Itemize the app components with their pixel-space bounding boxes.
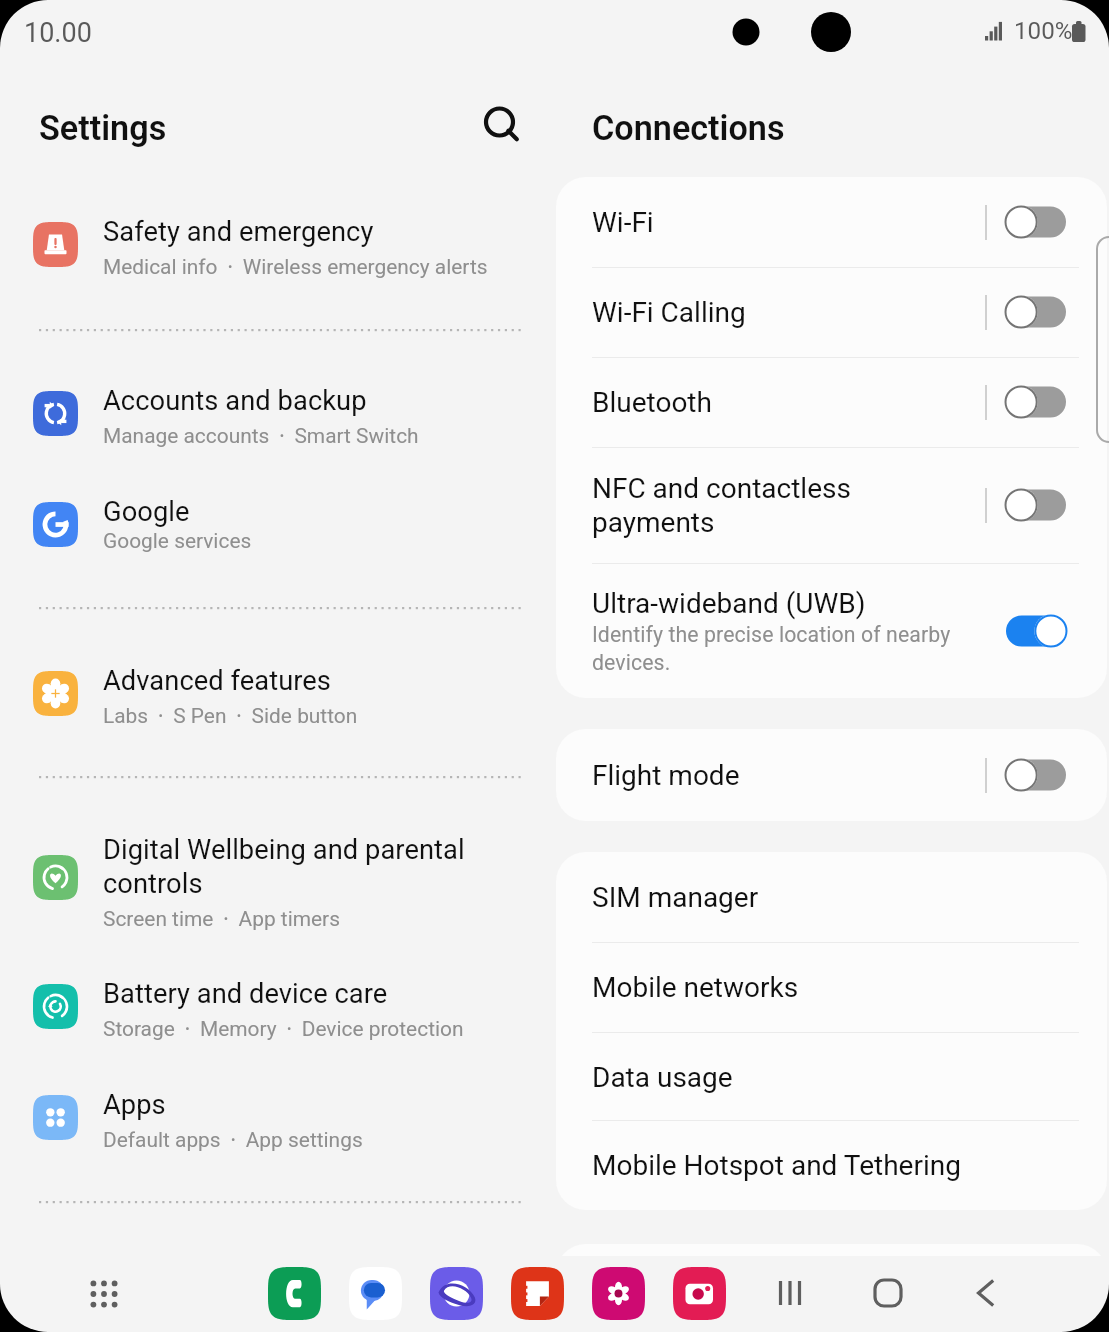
- button[interactable]: Mobile Hotspot and Tethering: [556, 1120, 1107, 1210]
- staticText: Data usage: [592, 1061, 733, 1094]
- button[interactable]: Search: [475, 98, 531, 154]
- staticText: 10.00: [24, 17, 92, 49]
- button[interactable]: Bluetooth: [1004, 380, 1074, 424]
- staticText: Apps: [103, 1087, 166, 1121]
- button[interactable]: Battery and device care: [0, 967, 556, 1053]
- staticText: Mobile networks: [592, 971, 799, 1004]
- button[interactable]: NFC and contactless payments: [1004, 483, 1074, 527]
- button[interactable]: Wi-Fi: [1004, 200, 1074, 244]
- button[interactable]: Safety and emergency: [0, 205, 556, 291]
- button[interactable]: Mobile networks: [556, 942, 1107, 1032]
- button[interactable]: internet: [430, 1267, 483, 1320]
- staticText: Ultra-wideband (UWB): [592, 586, 866, 620]
- button[interactable]: Apps: [0, 1078, 556, 1164]
- button[interactable]: Apps: [77, 1267, 130, 1320]
- staticText: Wi-Fi Calling: [592, 295, 746, 329]
- button[interactable]: Home: [858, 1263, 918, 1323]
- staticText: Screen time • App timers: [103, 899, 340, 932]
- staticText: Medical info • Wireless emergency alerts: [103, 247, 488, 280]
- staticText: Accounts and backup: [103, 383, 367, 417]
- staticText: Google services: [103, 527, 252, 553]
- button[interactable]: Data usage: [556, 1032, 1107, 1122]
- button[interactable]: Flight mode: [1004, 753, 1074, 797]
- button[interactable]: Back: [956, 1263, 1016, 1323]
- staticText: Labs • S Pen • Side button: [103, 696, 358, 729]
- button[interactable]: Bluetooth: [556, 357, 1107, 447]
- button[interactable]: phone: [268, 1267, 321, 1320]
- button[interactable]: gallery: [592, 1267, 645, 1320]
- staticText: Manage accounts • Smart Switch: [103, 416, 419, 449]
- button[interactable]: Google: [0, 485, 556, 571]
- button[interactable]: Flight mode: [556, 729, 1107, 821]
- staticText: Digital Wellbeing and parental controls: [103, 832, 465, 900]
- staticText: Bluetooth: [592, 385, 712, 419]
- button[interactable]: Recents: [760, 1263, 820, 1323]
- staticText: Flight mode: [592, 758, 740, 792]
- staticText: Google: [103, 494, 190, 528]
- button[interactable]: Digital Wellbeing and parental controls: [0, 832, 556, 950]
- button[interactable]: camera: [673, 1267, 726, 1320]
- button[interactable]: messages: [349, 1267, 402, 1320]
- button[interactable]: Wi-Fi Calling: [1004, 290, 1074, 334]
- button[interactable]: NFC and contactless payments: [556, 447, 1107, 563]
- staticText: Battery and device care: [103, 976, 388, 1010]
- staticText: Storage • Memory • Device protection: [103, 1009, 464, 1042]
- staticText: Safety and emergency: [103, 214, 374, 248]
- staticText: Connections: [592, 108, 785, 148]
- button[interactable]: Wi-Fi: [556, 177, 1107, 267]
- staticText: Advanced features: [103, 663, 331, 697]
- staticText: Default apps • App settings: [103, 1120, 363, 1153]
- button[interactable]: SIM manager: [556, 852, 1107, 942]
- button[interactable]: Accounts and backup: [0, 374, 556, 460]
- button[interactable]: Wi-Fi Calling: [556, 267, 1107, 357]
- staticText: Settings: [39, 108, 167, 148]
- button[interactable]: Ultra-wideband (UWB): [1004, 609, 1074, 653]
- button[interactable]: Ultra-wideband (UWB): [556, 563, 1107, 698]
- staticText: NFC and contactless payments: [592, 471, 851, 539]
- staticText: Identify the precise location of nearby …: [592, 620, 951, 676]
- staticText: SIM manager: [592, 881, 759, 914]
- staticText: Wi-Fi: [592, 205, 654, 239]
- staticText: 100%: [1014, 17, 1073, 45]
- button[interactable]: Advanced features: [0, 654, 556, 740]
- staticText: Mobile Hotspot and Tethering: [592, 1149, 961, 1182]
- button[interactable]: notes: [511, 1267, 564, 1320]
